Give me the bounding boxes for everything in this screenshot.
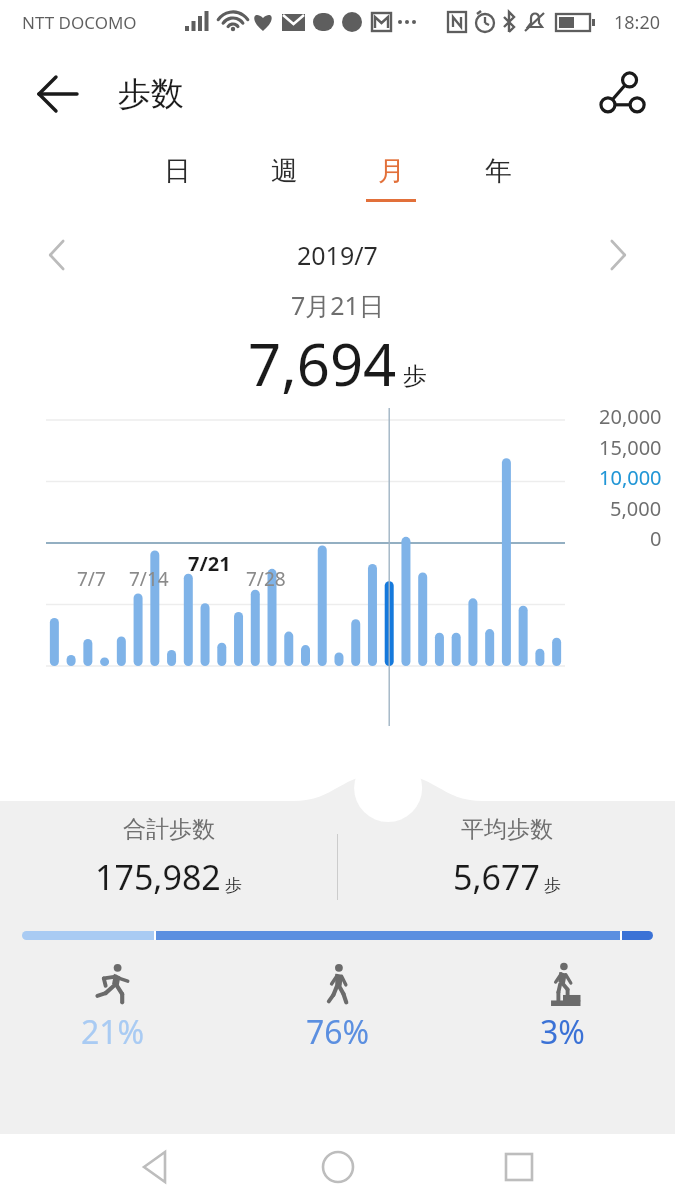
button[interactable]: 平均歩数 bbox=[338, 815, 675, 919]
staticText: 年 bbox=[485, 154, 512, 188]
button[interactable]: 合計歩数 bbox=[0, 815, 337, 919]
staticText: 7/7 bbox=[77, 566, 106, 592]
staticText: 7/14 bbox=[129, 566, 169, 592]
staticText: 歩 bbox=[403, 361, 427, 391]
button[interactable]: Home bbox=[312, 1141, 364, 1193]
staticText: 週 bbox=[271, 154, 298, 188]
button[interactable]: 21% bbox=[0, 960, 225, 1054]
staticText: 5,000 bbox=[610, 495, 662, 522]
staticText: 月 bbox=[378, 154, 405, 188]
button[interactable]: 年 bbox=[469, 144, 527, 222]
staticText: 7/28 bbox=[246, 566, 286, 592]
staticText: 2019/7 bbox=[297, 238, 378, 272]
staticText: 76% bbox=[306, 1010, 370, 1054]
button[interactable]: Previous month bbox=[32, 233, 76, 277]
staticText: 20,000 bbox=[599, 403, 662, 430]
button[interactable]: Share bbox=[595, 67, 649, 121]
staticText: 0 bbox=[650, 525, 662, 552]
button[interactable]: 3% bbox=[450, 960, 675, 1054]
button[interactable]: 週 bbox=[255, 144, 313, 222]
button[interactable]: Back bbox=[130, 1141, 182, 1193]
staticText: 歩 bbox=[225, 875, 242, 896]
button[interactable]: 76% bbox=[225, 960, 450, 1054]
staticText: 3% bbox=[540, 1010, 585, 1054]
staticText: 10,000 bbox=[599, 464, 662, 491]
button[interactable]: 日 bbox=[148, 144, 206, 222]
button[interactable]: Back bbox=[34, 70, 82, 118]
staticText: 歩 bbox=[544, 875, 561, 896]
staticText: NTT DOCOMO bbox=[22, 11, 137, 34]
staticText: 7/21 bbox=[188, 550, 231, 577]
staticText: 175,982 bbox=[95, 854, 221, 900]
button[interactable]: Next month bbox=[599, 233, 643, 277]
staticText: 5,677 bbox=[453, 854, 540, 900]
staticText: 15,000 bbox=[599, 434, 662, 461]
button[interactable]: 月 bbox=[362, 144, 420, 222]
staticText: 21% bbox=[81, 1010, 145, 1054]
staticText: 7,694 bbox=[248, 324, 397, 398]
staticText: 7月21日 bbox=[291, 288, 384, 322]
staticText: 18:20 bbox=[614, 10, 661, 35]
staticText: 歩数 bbox=[118, 73, 184, 115]
staticText: 日 bbox=[164, 154, 191, 188]
staticText: 平均歩数 bbox=[461, 815, 553, 844]
button[interactable]: Recent apps bbox=[493, 1141, 545, 1193]
staticText: 合計歩数 bbox=[123, 815, 215, 844]
